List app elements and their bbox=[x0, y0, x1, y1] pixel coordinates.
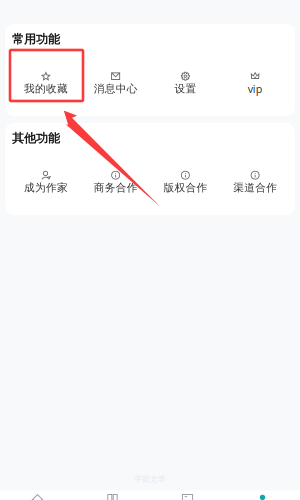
button[interactable]: 渠道合作 bbox=[220, 171, 290, 194]
staticText: 成为作家 bbox=[24, 181, 68, 194]
staticText: 设置 bbox=[174, 82, 196, 95]
button[interactable]: Home bbox=[0, 494, 75, 500]
button[interactable]: 设置 bbox=[150, 72, 220, 95]
button[interactable]: 消息中心 bbox=[81, 72, 151, 95]
staticText: 渠道合作 bbox=[233, 181, 277, 194]
button[interactable]: Library bbox=[75, 494, 150, 500]
staticText: 其他功能 bbox=[12, 131, 60, 146]
staticText: 商务合作 bbox=[94, 181, 138, 194]
button[interactable]: vip bbox=[220, 72, 290, 95]
staticText: 我的收藏 bbox=[24, 82, 68, 95]
button[interactable]: 成为作家 bbox=[11, 171, 81, 194]
staticText: 宇宙文学 bbox=[134, 474, 166, 484]
button[interactable]: Bookshelf bbox=[150, 494, 225, 500]
button[interactable]: Me bbox=[225, 494, 300, 500]
staticText: 版权合作 bbox=[163, 181, 207, 194]
staticText: 常用功能 bbox=[12, 32, 60, 47]
button[interactable]: 我的收藏 bbox=[11, 72, 81, 95]
button[interactable]: 版权合作 bbox=[150, 171, 220, 194]
button[interactable]: 商务合作 bbox=[81, 171, 151, 194]
staticText: vip bbox=[248, 82, 263, 96]
staticText: 消息中心 bbox=[94, 82, 138, 95]
